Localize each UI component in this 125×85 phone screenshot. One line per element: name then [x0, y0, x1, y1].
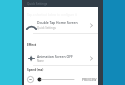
staticText: Quick Settings [27, 2, 48, 6]
staticText: Tap a shortcut below to configure it [27, 13, 77, 17]
staticText: Effect [27, 43, 37, 47]
staticText: PREVIEW [82, 77, 97, 82]
button[interactable]: Animation Screen OFF [24, 52, 98, 66]
staticText: None [37, 59, 44, 63]
button[interactable]: Speed value [27, 76, 34, 83]
button[interactable]: Open [89, 56, 94, 61]
button[interactable]: Quick Settings [24, 0, 98, 7]
staticText: Quick Settings [37, 26, 56, 30]
button[interactable]: Open [89, 23, 94, 28]
button[interactable]: Double Tap Home Screen [24, 18, 98, 32]
staticText: Animation Screen OFF [37, 54, 73, 59]
button[interactable]: PREVIEW [81, 76, 98, 83]
staticText: Double Tap Home Screen [37, 20, 78, 25]
staticText: Speed (ms) [27, 68, 44, 72]
